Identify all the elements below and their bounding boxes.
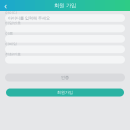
- button[interactable]: Back: [0, 0, 11, 11]
- staticText: 인증: [61, 75, 69, 80]
- staticText: 이름: [5, 31, 13, 36]
- staticText: 회원 가입: [54, 2, 76, 9]
- button[interactable]: 인증: [5, 73, 125, 81]
- staticText: 전화번호: [5, 52, 21, 57]
- button[interactable]: 회원가입: [6, 88, 124, 96]
- staticText: 이메일: [5, 42, 17, 46]
- staticText: 비밀번호: [5, 21, 21, 26]
- staticText: 아이디: [5, 10, 17, 15]
- staticText: 아이디를 입력해 주세요: [8, 16, 50, 20]
- staticText: 회원가입: [57, 90, 73, 95]
- staticText: ‹: [4, 0, 7, 12]
